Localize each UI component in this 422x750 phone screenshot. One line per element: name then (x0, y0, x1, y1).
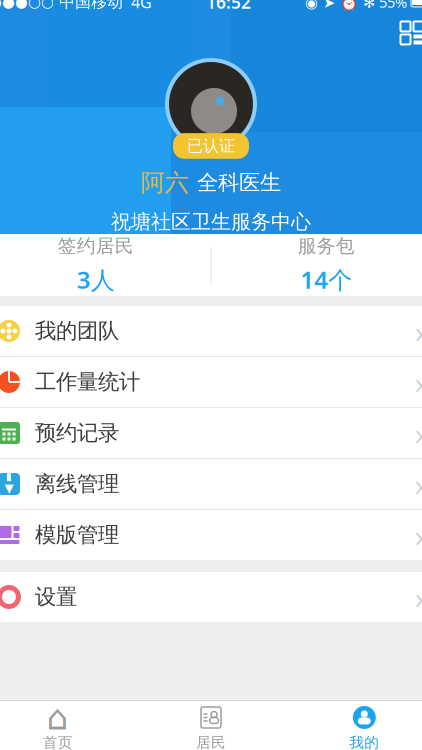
staticText: ▼ (4, 481, 13, 495)
staticText: › (415, 412, 422, 454)
staticText: › (415, 576, 422, 618)
staticText: 签约居民 (58, 235, 134, 257)
button[interactable]: ▼ (0, 459, 422, 510)
staticText: 我的 (349, 733, 379, 750)
button[interactable]: 设置 (0, 572, 422, 622)
button[interactable]: 二维码 (395, 16, 422, 50)
staticText: 首页 (43, 733, 73, 750)
staticText: › (415, 310, 422, 352)
staticText: 服务包 (298, 235, 355, 257)
button[interactable]: ⌂ (0, 699, 134, 750)
staticText: 模版管理 (35, 522, 119, 548)
staticText: › (415, 361, 422, 403)
staticText: ●●●○○ (0, 0, 54, 10)
staticText: 设置 (35, 584, 77, 610)
button[interactable]: 我的 (288, 699, 422, 750)
staticText: ⌂ (47, 698, 69, 737)
button[interactable]: 居民 (134, 699, 288, 750)
staticText: 祝塘社区卫生服务中心 (111, 209, 311, 234)
button[interactable]: 模版管理 (0, 510, 422, 560)
staticText: 工作量统计 (35, 369, 140, 395)
staticText: 中国移动 (54, 0, 123, 12)
button[interactable]: 我的团队 (0, 306, 422, 357)
button[interactable]: 工作量统计 (0, 357, 422, 408)
staticText: › (415, 514, 422, 556)
staticText: 4G (123, 0, 152, 13)
staticText: 全科医生 (197, 170, 281, 196)
staticText: 离线管理 (35, 471, 119, 497)
button[interactable]: 签约居民 (0, 235, 210, 295)
staticText: 我的团队 (35, 318, 119, 344)
staticText: ◉ ➤ ⏰ ✻ 55% (305, 0, 407, 12)
staticText: 16:52 (206, 0, 251, 13)
staticText: 14个 (300, 263, 352, 295)
staticText: › (415, 463, 422, 505)
staticText: 已认证 (187, 136, 235, 156)
staticText: 3人 (77, 263, 115, 295)
button[interactable]: 预约记录 (0, 408, 422, 459)
staticText: 预约记录 (35, 420, 119, 446)
button[interactable]: 服务包 (211, 235, 422, 295)
staticText: 阿六 (141, 168, 189, 197)
staticText: 居民 (196, 733, 226, 750)
